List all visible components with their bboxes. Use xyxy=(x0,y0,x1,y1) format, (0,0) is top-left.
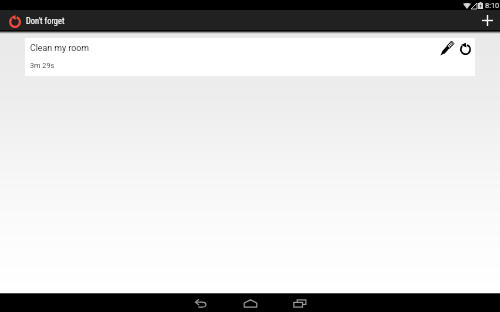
staticText: Clean my room xyxy=(30,43,90,53)
button[interactable]: Edit xyxy=(439,41,454,56)
button[interactable]: Recents xyxy=(275,295,325,312)
staticText: Don't forget xyxy=(26,16,65,26)
button[interactable]: Reset xyxy=(458,41,473,56)
button[interactable]: Add xyxy=(477,10,498,30)
button[interactable]: Back xyxy=(175,295,225,312)
button[interactable]: Don't forget xyxy=(7,12,23,28)
staticText: 8:10 xyxy=(485,1,500,10)
button[interactable]: Clean my room xyxy=(25,38,475,76)
button[interactable]: Home xyxy=(225,295,275,312)
staticText: 3m 29s xyxy=(30,61,55,70)
